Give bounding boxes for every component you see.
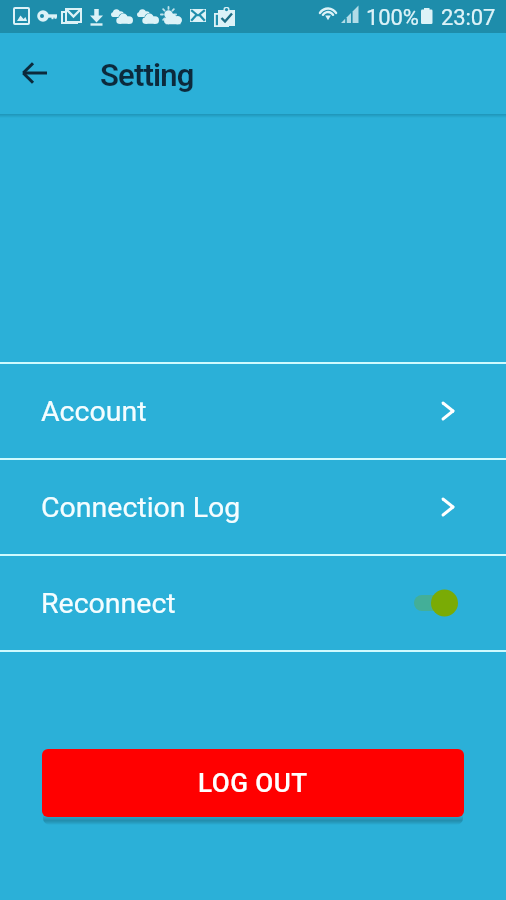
staticText: Reconnect <box>41 587 176 620</box>
staticText: LOG OUT <box>198 768 308 798</box>
button[interactable]: Reconnect <box>0 556 506 650</box>
staticText: Setting <box>100 57 194 93</box>
button[interactable]: Back <box>11 50 59 98</box>
other: Open <box>438 398 456 424</box>
other: Open <box>438 494 456 520</box>
button[interactable]: Reconnect toggle <box>413 586 470 620</box>
button[interactable]: LOG OUT <box>42 749 464 817</box>
staticText: Connection Log <box>41 491 241 524</box>
staticText: Account <box>41 395 147 428</box>
button[interactable]: Account <box>0 364 506 458</box>
button[interactable]: Connection Log <box>0 460 506 554</box>
staticText: 23:07 <box>441 5 496 31</box>
staticText: 100% <box>366 5 419 31</box>
